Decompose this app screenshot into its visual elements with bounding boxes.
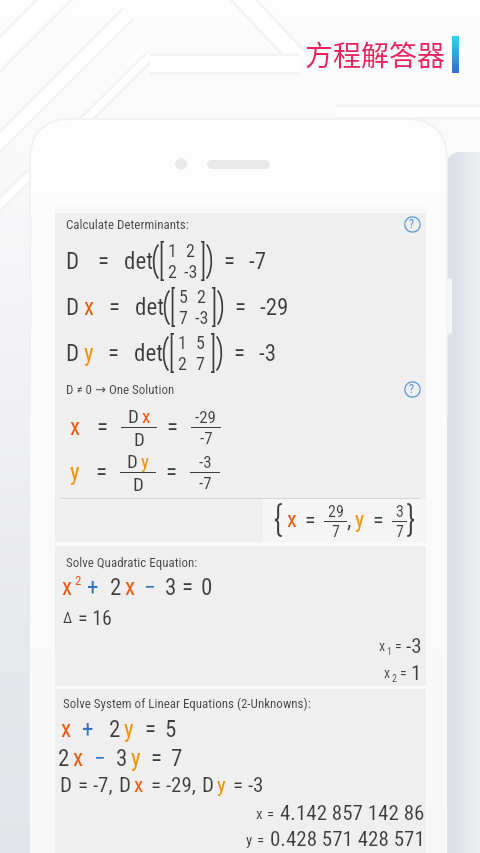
staticText: D: [60, 773, 72, 798]
staticText: 2: [75, 573, 82, 588]
staticText: 5: [196, 332, 205, 353]
staticText: x: [61, 716, 72, 743]
staticText: =: [108, 340, 120, 367]
staticText: ?: [409, 382, 415, 396]
staticText: -3: [406, 634, 422, 659]
staticText: =: [145, 716, 157, 743]
staticText: x: [70, 414, 81, 441]
staticText: = 16: [78, 606, 112, 629]
staticText: =: [97, 414, 109, 441]
staticText: -29: [195, 407, 217, 427]
staticText: Δ: [63, 609, 73, 627]
staticText: 2: [392, 673, 397, 685]
staticText: 29: [328, 502, 344, 521]
staticText: Solve System of Linear Equations (2-Unkn…: [63, 696, 311, 711]
staticText: x: [73, 745, 84, 772]
staticText: D: [134, 428, 145, 450]
staticText: =: [151, 745, 163, 772]
staticText: 1: [387, 646, 392, 658]
staticText: =: [257, 831, 265, 849]
staticText: det: [135, 294, 164, 321]
staticText: D: [133, 473, 144, 495]
staticText: y: [70, 459, 80, 486]
staticText: 2: [168, 261, 177, 282]
staticText: =: [109, 294, 121, 321]
staticText: y: [217, 773, 226, 798]
staticText: D: [128, 405, 139, 427]
staticText: 3: [116, 745, 128, 772]
staticText: 0.428 571 428 571: [270, 827, 425, 852]
staticText: =: [96, 459, 108, 486]
staticText: -29: [260, 294, 289, 321]
button[interactable]: Help: [400, 212, 424, 236]
staticText: 3: [165, 574, 177, 601]
button[interactable]: Help: [400, 377, 424, 401]
staticText: -3: [195, 307, 209, 328]
staticText: -3: [259, 340, 277, 367]
staticText: 7: [171, 745, 183, 772]
staticText: 2: [58, 745, 70, 772]
staticText: =: [395, 638, 402, 654]
staticText: ,: [347, 507, 352, 533]
staticText: D: [66, 248, 80, 275]
staticText: 2: [109, 716, 121, 743]
staticText: =: [305, 507, 316, 533]
staticText: =: [373, 507, 384, 533]
staticText: x: [62, 574, 73, 601]
staticText: 2: [197, 286, 206, 307]
staticText: 3: [396, 502, 404, 521]
staticText: 1: [411, 661, 422, 686]
staticText: Calculate Determinants:: [66, 217, 189, 232]
staticText: x: [125, 574, 136, 601]
staticText: D ≠ 0 → One Solution: [66, 382, 175, 397]
staticText: 2: [186, 240, 195, 261]
staticText: x: [84, 294, 95, 321]
staticText: −: [144, 574, 156, 601]
staticText: -7: [199, 473, 212, 493]
staticText: =: [98, 248, 110, 275]
staticText: +: [87, 574, 99, 601]
staticText: 方程解答器: [305, 34, 446, 75]
staticText: 0: [201, 574, 213, 601]
staticText: y: [141, 450, 149, 472]
staticText: y: [355, 507, 365, 533]
staticText: -7: [200, 428, 213, 448]
staticText: 2: [110, 574, 122, 601]
staticText: y: [246, 831, 253, 849]
staticText: -3: [184, 261, 198, 282]
staticText: D: [66, 294, 80, 321]
staticText: y: [84, 340, 94, 367]
staticText: det: [124, 248, 153, 275]
staticText: 7: [332, 522, 340, 538]
staticText: -3: [199, 452, 212, 472]
staticText: -7: [249, 248, 267, 275]
staticText: =: [182, 574, 194, 601]
staticText: = -3: [233, 773, 264, 798]
staticText: D: [127, 450, 138, 472]
staticText: D: [202, 773, 214, 798]
staticText: =: [224, 248, 236, 275]
staticText: x: [287, 507, 297, 533]
staticText: x: [142, 405, 151, 427]
staticText: x: [384, 665, 391, 681]
staticText: Solve Quadratic Equation:: [66, 555, 198, 570]
staticText: D: [119, 773, 131, 798]
staticText: =: [267, 805, 275, 823]
staticText: 7: [196, 353, 205, 374]
staticText: ?: [409, 217, 415, 231]
staticText: = -29,: [151, 773, 196, 798]
staticText: y: [124, 716, 134, 743]
staticText: x: [379, 638, 386, 654]
staticText: x: [256, 805, 263, 823]
staticText: = -7,: [78, 773, 113, 798]
staticText: 2: [178, 353, 187, 374]
staticText: =: [234, 340, 246, 367]
staticText: y: [131, 745, 141, 772]
staticText: 4.142 857 142 86: [280, 801, 425, 826]
staticText: =: [167, 414, 179, 441]
staticText: −: [94, 745, 106, 772]
staticText: =: [235, 294, 247, 321]
staticText: 5: [165, 716, 177, 743]
staticText: 1: [168, 240, 177, 261]
staticText: 7: [179, 307, 188, 328]
